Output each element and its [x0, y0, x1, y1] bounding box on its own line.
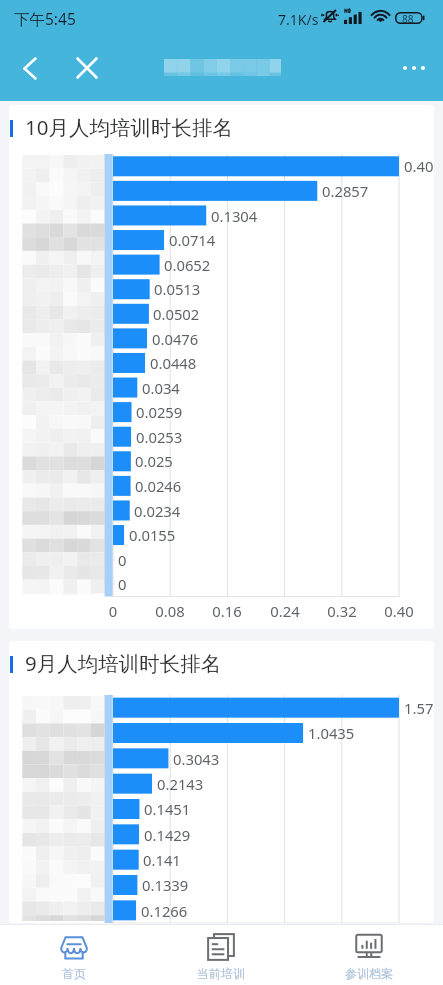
- staticText: 0.1429: [144, 825, 191, 845]
- staticText: 0.034: [142, 378, 180, 398]
- staticText: 0.0448: [150, 353, 197, 373]
- staticText: 0.141: [143, 850, 181, 870]
- staticText: 10月人均培训时长排名: [25, 113, 233, 141]
- button[interactable]: 首页: [0, 925, 147, 985]
- staticText: 0.1339: [142, 875, 189, 895]
- staticText: 首页: [62, 966, 86, 981]
- staticText: 下午5:45: [14, 8, 76, 29]
- staticText: 0.0155: [129, 525, 176, 545]
- staticText: 0.0652: [164, 255, 211, 275]
- staticText: 当前培训: [197, 966, 245, 981]
- button[interactable]: 参训档案: [295, 925, 443, 985]
- staticText: 0.0253: [136, 427, 183, 447]
- staticText: 参训档案: [345, 966, 393, 981]
- staticText: 0.24: [265, 601, 305, 621]
- staticText: 0.0234: [134, 501, 181, 521]
- staticText: 88: [402, 12, 414, 24]
- staticText: 0.0714: [169, 230, 216, 250]
- staticText: 0.025: [135, 451, 173, 471]
- staticText: 1.0435: [308, 723, 355, 743]
- staticText: 1.57: [404, 698, 434, 718]
- staticText: 0.0502: [153, 304, 200, 324]
- staticText: 0.40: [379, 601, 419, 621]
- button[interactable]: 当前培训: [147, 925, 295, 985]
- staticText: 0.0246: [135, 476, 182, 496]
- staticText: 0.1266: [141, 901, 188, 921]
- staticText: 0.2143: [157, 774, 204, 794]
- button[interactable]: 9月人均培训时长排名: [9, 641, 434, 923]
- button[interactable]: More options: [392, 46, 436, 90]
- staticText: 0.3043: [173, 749, 220, 769]
- staticText: 7.1K/s: [278, 10, 319, 29]
- staticText: 0.2857: [322, 181, 369, 201]
- staticText: 0.08: [150, 601, 190, 621]
- staticText: 0.32: [322, 601, 362, 621]
- staticText: 0: [93, 601, 133, 621]
- staticText: 0.40: [404, 156, 434, 176]
- staticText: 0: [118, 550, 127, 570]
- staticText: 0.0259: [136, 402, 183, 422]
- staticText: 9月人均培训时长排名: [25, 649, 222, 677]
- button[interactable]: 10月人均培训时长排名: [9, 105, 434, 629]
- staticText: 0.0513: [154, 279, 201, 299]
- staticText: 0.1304: [211, 206, 258, 226]
- staticText: 0: [118, 574, 127, 594]
- staticText: 0.16: [207, 601, 247, 621]
- staticText: 0.1451: [144, 799, 191, 819]
- button[interactable]: Back: [8, 46, 52, 90]
- staticText: 0.0476: [152, 329, 199, 349]
- button[interactable]: Close: [65, 46, 109, 90]
